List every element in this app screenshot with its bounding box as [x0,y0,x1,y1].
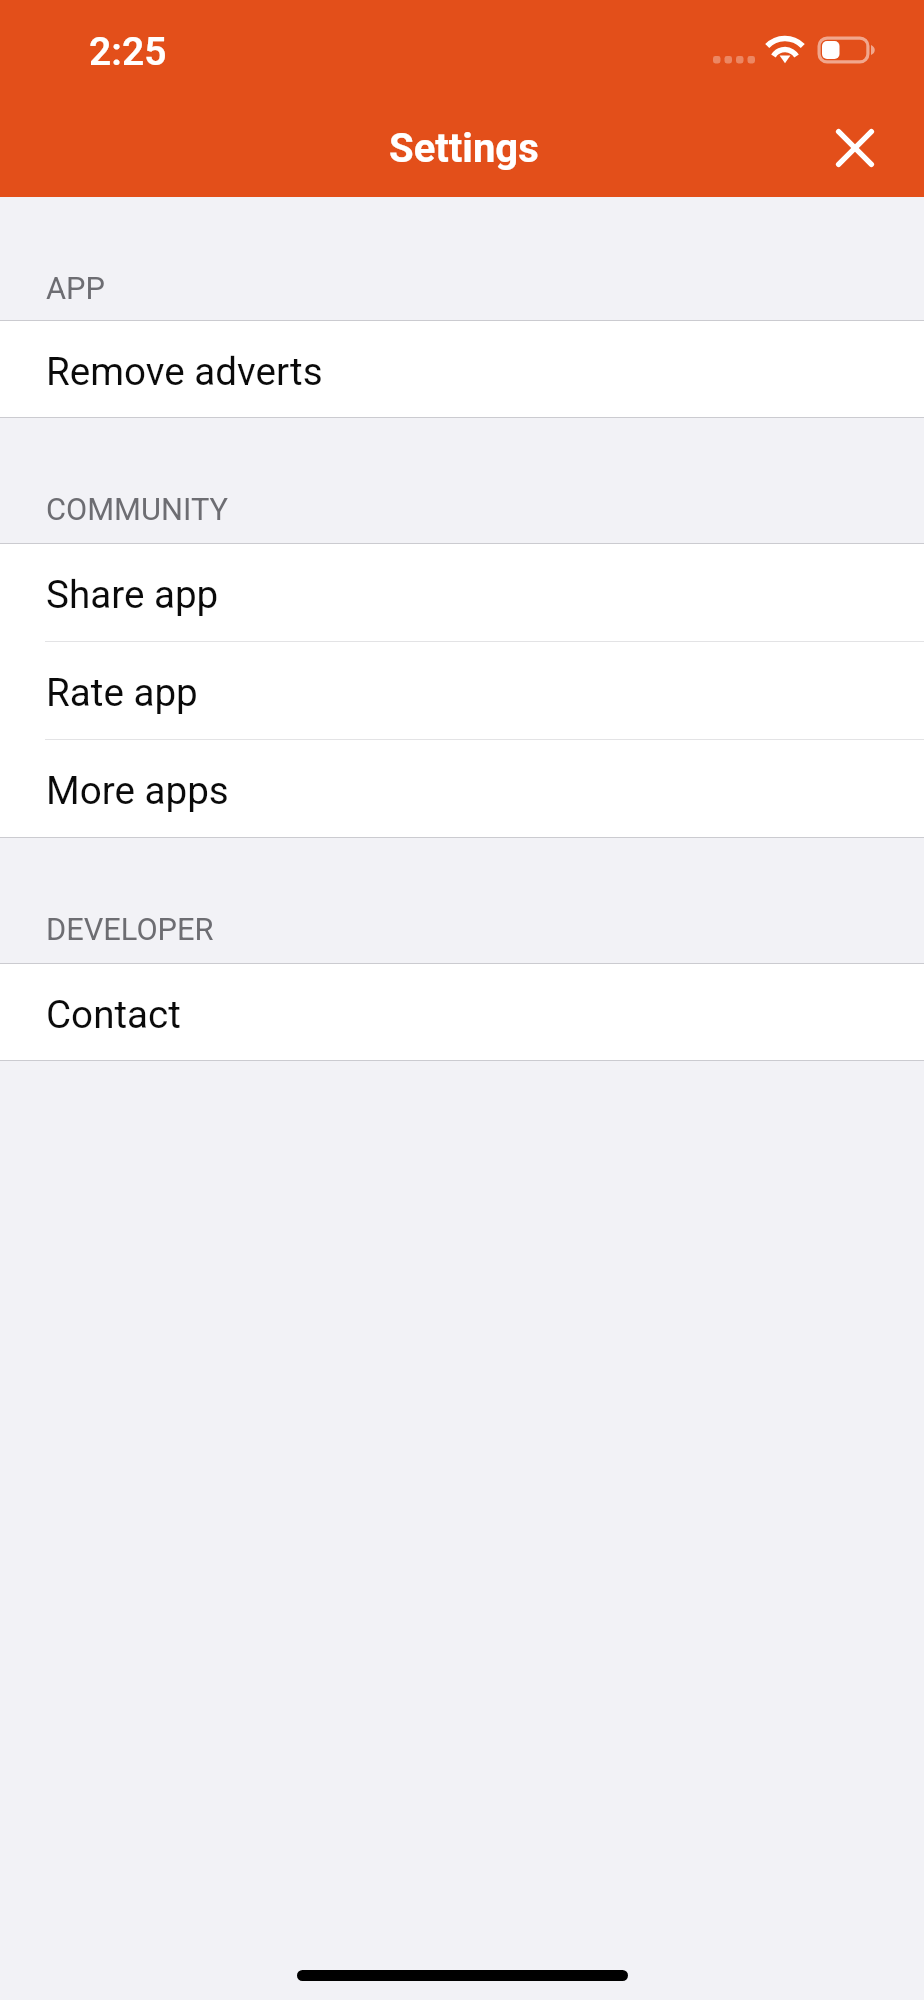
staticText: Contact [46,992,181,1037]
staticText: APP [46,270,105,306]
button[interactable]: Share app [0,544,924,641]
button[interactable]: Rate app [0,642,924,739]
button[interactable]: Contact [0,964,924,1060]
other: Signal, Wi-Fi and battery status [0,0,924,90]
button[interactable]: Remove adverts [0,321,924,417]
staticText: Settings [389,125,539,172]
staticText: COMMUNITY [46,491,228,527]
staticText: Share app [46,572,219,617]
staticText: Remove adverts [46,349,323,394]
staticText: Rate app [46,670,198,715]
staticText: More apps [46,768,229,813]
staticText: DEVELOPER [46,911,214,947]
button[interactable]: More apps [0,740,924,837]
button[interactable]: Close [810,103,900,193]
staticText: 2:25 [89,29,167,75]
